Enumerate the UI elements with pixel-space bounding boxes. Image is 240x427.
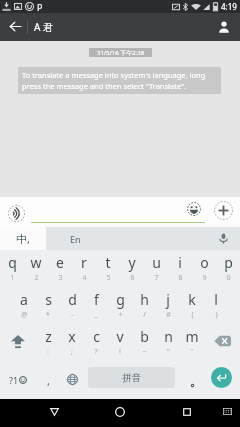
staticText: h (140, 290, 149, 309)
staticText: n (164, 327, 173, 346)
staticText: 4:19 (221, 1, 237, 12)
button[interactable]: Switch language (60, 361, 84, 399)
staticText: i (178, 253, 182, 272)
staticText: - (71, 310, 74, 320)
button[interactable]: Delete (204, 324, 240, 361)
button[interactable]: w (24, 250, 48, 287)
button[interactable]: t (96, 250, 120, 287)
staticText: 8 (178, 273, 183, 283)
button[interactable]: g (108, 287, 132, 324)
staticText: ? (94, 347, 98, 357)
button[interactable]: h (132, 287, 156, 324)
staticText: p (224, 253, 233, 272)
staticText: j (166, 290, 170, 309)
button[interactable]: Back (42, 400, 66, 424)
button[interactable]: Add attachment (214, 201, 233, 220)
staticText: ?1 (9, 374, 19, 386)
staticText: g (116, 290, 125, 309)
staticText: : (47, 347, 49, 357)
staticText: y (128, 253, 136, 272)
staticText: b (140, 327, 149, 346)
button[interactable]: p (216, 250, 240, 287)
button[interactable]: u (144, 250, 168, 287)
staticText: ' (191, 347, 193, 357)
staticText: 3 (58, 273, 63, 283)
staticText: + (118, 310, 123, 320)
button[interactable]: n (156, 324, 180, 361)
button[interactable]: b (132, 324, 156, 361)
button[interactable]: z (36, 324, 60, 361)
button[interactable] (180, 361, 204, 399)
staticText: ; (71, 347, 73, 357)
button[interactable]: f (84, 287, 108, 324)
staticText: A 君 (34, 20, 53, 34)
staticText: 中, (16, 231, 30, 246)
button[interactable]: Recent apps (175, 400, 199, 424)
staticText: e (56, 253, 64, 272)
button[interactable]: 拼音 (88, 367, 175, 388)
button[interactable]: Emoji (186, 201, 201, 216)
staticText: 0 (226, 273, 231, 283)
button[interactable]: c (84, 324, 108, 361)
staticText: c (93, 327, 100, 346)
button[interactable]: Voice input (210, 227, 236, 250)
staticText: 9 (202, 273, 207, 283)
staticText: k (188, 290, 196, 309)
button[interactable]: To translate a message into system's lan… (18, 67, 221, 94)
button[interactable]: Shift (0, 324, 36, 361)
button[interactable]: e (48, 250, 72, 287)
staticText: P (37, 1, 43, 13)
button[interactable]: x (60, 324, 84, 361)
staticText: l (214, 290, 218, 309)
staticText: o (200, 253, 209, 272)
button[interactable] (31, 201, 181, 223)
staticText: " (167, 347, 170, 357)
button[interactable]: v (108, 324, 132, 361)
staticText: x (68, 327, 76, 346)
button[interactable]: l (204, 287, 228, 324)
button[interactable]: Enter (211, 367, 232, 388)
button[interactable]: Voice message (4, 201, 28, 225)
button[interactable]: d (60, 287, 84, 324)
button[interactable]: j (156, 287, 180, 324)
staticText: m (185, 327, 199, 346)
button[interactable]: , (36, 361, 60, 399)
button[interactable]: s (36, 287, 60, 324)
staticText: , (47, 373, 50, 388)
staticText: z (45, 327, 52, 346)
button[interactable]: ?1 (0, 361, 36, 399)
button[interactable]: k (180, 287, 204, 324)
staticText: * (46, 310, 50, 320)
button[interactable]: y (120, 250, 144, 287)
staticText: 6 (130, 273, 135, 283)
button[interactable]: Contact info (211, 14, 237, 40)
staticText: 7 (154, 273, 159, 283)
staticText: d (68, 290, 77, 309)
staticText: ( (191, 310, 194, 320)
button[interactable]: q (0, 250, 24, 287)
button[interactable]: Back (2, 13, 28, 39)
button[interactable]: i (168, 250, 192, 287)
staticText: ! (119, 347, 121, 357)
staticText: u (152, 253, 161, 272)
staticText: v (116, 327, 124, 346)
button[interactable]: En (52, 227, 98, 250)
staticText: _ (94, 310, 98, 320)
button[interactable]: Hide keyboard (216, 400, 238, 422)
staticText: 4 (82, 273, 87, 283)
button[interactable]: Home (108, 400, 132, 424)
staticText: @ (21, 310, 28, 320)
staticText: t (105, 253, 111, 272)
button[interactable]: 中, (0, 227, 46, 250)
staticText: En (70, 233, 81, 245)
button[interactable]: a (12, 287, 36, 324)
staticText: r (81, 253, 87, 272)
staticText: w (30, 253, 42, 272)
button[interactable]: o (192, 250, 216, 287)
staticText: 31/5/16 下午2:38 (97, 49, 145, 57)
staticText: q (8, 253, 17, 272)
button[interactable]: m (180, 324, 204, 361)
staticText: s (45, 290, 52, 309)
staticText: / (143, 310, 146, 320)
button[interactable]: r (72, 250, 96, 287)
